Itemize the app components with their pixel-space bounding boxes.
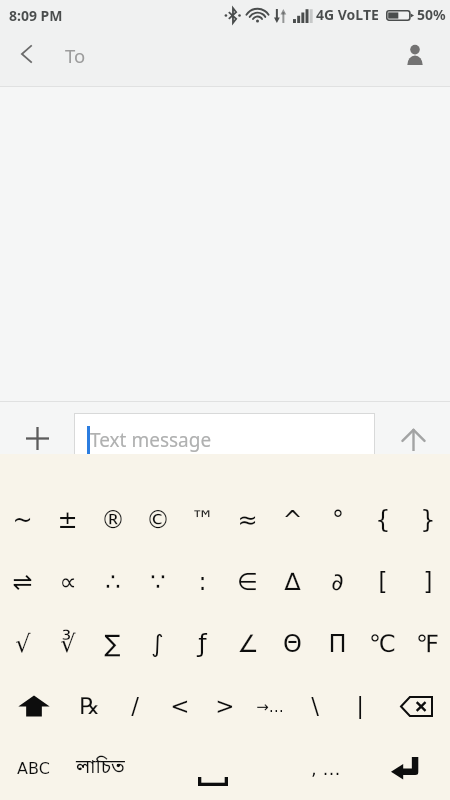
- staticText: \: [311, 693, 319, 720]
- staticText: ^: [282, 506, 303, 534]
- button[interactable]: ≈: [225, 489, 270, 551]
- staticText: , …: [311, 758, 341, 779]
- button[interactable]: Π: [315, 613, 360, 675]
- staticText: ~: [12, 506, 33, 534]
- staticText: :: [198, 568, 207, 596]
- button[interactable]: ℞: [67, 675, 112, 737]
- button[interactable]: [: [360, 551, 405, 613]
- button[interactable]: , …: [292, 737, 360, 799]
- button[interactable]: ∫: [135, 613, 180, 675]
- staticText: >: [215, 693, 235, 720]
- staticText: ∑: [104, 630, 121, 658]
- staticText: লাচিত: [76, 755, 125, 781]
- staticText: ℃: [369, 630, 396, 658]
- staticText: |: [356, 693, 364, 720]
- button[interactable]: ]: [405, 551, 450, 613]
- button[interactable]: Θ: [270, 613, 315, 675]
- button[interactable]: ⇌: [0, 551, 45, 613]
- button[interactable]: :: [180, 551, 225, 613]
- staticText: 4G VoLTE: [316, 5, 379, 24]
- staticText: ƒ: [198, 630, 207, 658]
- button[interactable]: }: [405, 489, 450, 551]
- button[interactable]: /: [112, 675, 157, 737]
- button[interactable]: ∠: [225, 613, 270, 675]
- button[interactable]: ∴: [90, 551, 135, 613]
- button[interactable]: Space: [134, 737, 292, 799]
- staticText: ∈: [237, 568, 258, 596]
- staticText: ℉: [416, 630, 439, 658]
- staticText: }: [420, 506, 436, 534]
- staticText: ]: [423, 568, 433, 596]
- button[interactable]: ±: [45, 489, 90, 551]
- button[interactable]: √: [0, 613, 45, 675]
- staticText: Θ: [283, 630, 302, 658]
- button[interactable]: ∝: [45, 551, 90, 613]
- button[interactable]: >: [202, 675, 247, 737]
- button[interactable]: ®: [90, 489, 135, 551]
- button[interactable]: লাচিত: [67, 737, 134, 799]
- button[interactable]: ^: [270, 489, 315, 551]
- staticText: Π: [328, 630, 347, 658]
- staticText: ∴: [105, 568, 121, 596]
- staticText: ©: [146, 506, 170, 534]
- button[interactable]: Shift: [0, 675, 67, 737]
- button[interactable]: Enter: [360, 737, 450, 799]
- button[interactable]: Choose contact: [394, 32, 450, 80]
- staticText: Text message: [90, 427, 212, 453]
- button[interactable]: Send: [375, 401, 450, 454]
- button[interactable]: Backspace: [382, 675, 450, 737]
- button[interactable]: Text message: [74, 413, 375, 454]
- staticText: To: [65, 43, 86, 68]
- button[interactable]: °: [315, 489, 360, 551]
- staticText: {: [375, 506, 391, 534]
- staticText: ℞: [79, 693, 100, 720]
- button[interactable]: ℃: [360, 613, 405, 675]
- button[interactable]: Add attachment: [0, 401, 74, 454]
- button[interactable]: ABC: [0, 737, 67, 799]
- staticText: 50%: [417, 5, 446, 24]
- staticText: ±: [57, 506, 78, 534]
- staticText: √: [15, 630, 31, 658]
- staticText: ∂: [331, 568, 344, 596]
- button[interactable]: ∛: [45, 613, 90, 675]
- button[interactable]: \: [292, 675, 337, 737]
- staticText: ∛: [60, 630, 76, 658]
- button[interactable]: ©: [135, 489, 180, 551]
- button[interactable]: ƒ: [180, 613, 225, 675]
- staticText: 8:09 PM: [9, 6, 63, 25]
- button[interactable]: →…: [247, 675, 292, 737]
- staticText: ABC: [17, 759, 50, 778]
- button[interactable]: ∑: [90, 613, 135, 675]
- button[interactable]: ∵: [135, 551, 180, 613]
- staticText: ⇌: [12, 568, 33, 596]
- staticText: [: [378, 568, 388, 596]
- button[interactable]: |: [337, 675, 382, 737]
- staticText: ≈: [237, 506, 258, 534]
- button[interactable]: ℉: [405, 613, 450, 675]
- staticText: ™: [191, 506, 215, 534]
- button[interactable]: {: [360, 489, 405, 551]
- staticText: ∠: [237, 630, 259, 658]
- staticText: →…: [256, 698, 284, 715]
- staticText: ∝: [59, 568, 77, 596]
- staticText: ®: [101, 506, 125, 534]
- staticText: ∆: [284, 568, 301, 596]
- button[interactable]: ~: [0, 489, 45, 551]
- button[interactable]: ∂: [315, 551, 360, 613]
- staticText: /: [131, 693, 139, 720]
- button[interactable]: ∆: [270, 551, 315, 613]
- button[interactable]: <: [157, 675, 202, 737]
- button[interactable]: ∈: [225, 551, 270, 613]
- staticText: ∫: [151, 630, 164, 658]
- staticText: <: [170, 693, 190, 720]
- staticText: °: [332, 506, 344, 534]
- button[interactable]: Back: [0, 32, 52, 80]
- staticText: ∵: [150, 568, 166, 596]
- button[interactable]: ™: [180, 489, 225, 551]
